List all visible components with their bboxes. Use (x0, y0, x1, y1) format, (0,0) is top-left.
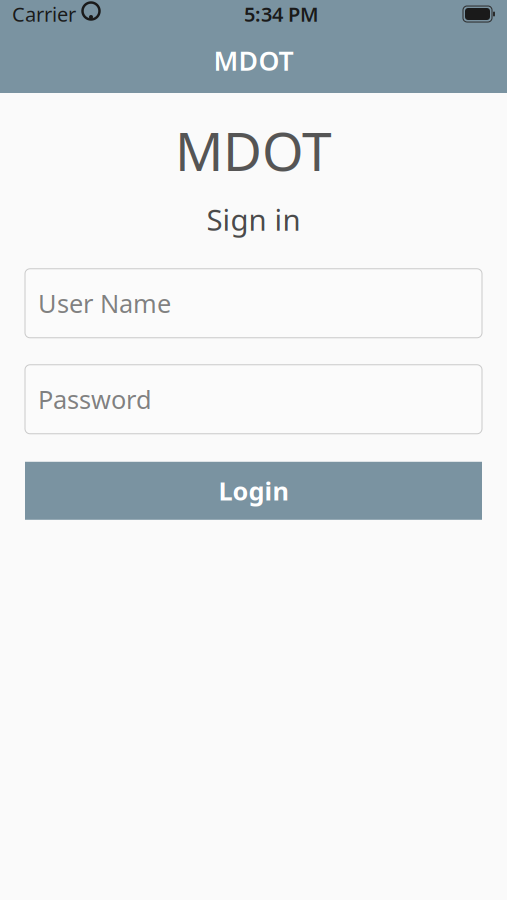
staticText: Password (38, 382, 152, 416)
staticText: User Name (38, 286, 171, 320)
staticText: 5:34 PM (244, 1, 319, 27)
staticText: MDOT (175, 115, 332, 186)
staticText: Carrier (12, 1, 76, 27)
staticText: Login (218, 474, 288, 508)
button[interactable]: Login (25, 462, 482, 520)
staticText: MDOT (213, 43, 293, 78)
staticText: Sign in (206, 200, 300, 239)
